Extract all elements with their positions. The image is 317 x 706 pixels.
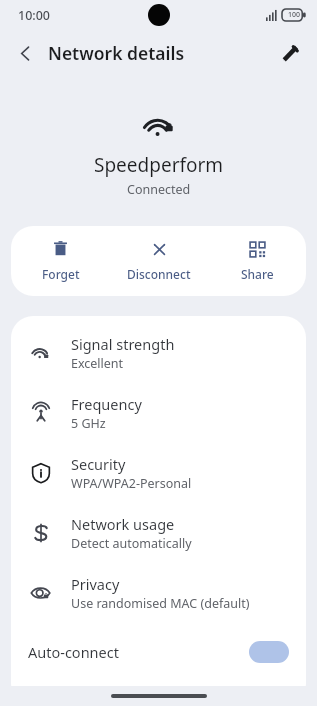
staticText: 10:00 — [18, 7, 51, 24]
button[interactable]: Frequency — [11, 383, 306, 443]
staticText: Speedperform — [94, 152, 224, 178]
staticText: Frequency — [71, 394, 142, 414]
staticText: WPA/WPA2-Personal — [71, 475, 192, 492]
staticText: Excellent — [71, 355, 124, 372]
button[interactable]: Disconnect — [110, 226, 208, 296]
staticText: Signal strength — [71, 334, 175, 354]
staticText: Disconnect — [127, 266, 191, 282]
staticText: Share — [241, 266, 274, 282]
button[interactable]: Forget — [11, 226, 110, 296]
button[interactable]: Network usage — [11, 503, 306, 563]
staticText: Privacy — [71, 574, 120, 594]
button[interactable]: Share — [208, 226, 306, 296]
button[interactable]: Edit — [271, 34, 309, 72]
staticText: Connected — [127, 181, 191, 198]
staticText: Auto-connect — [28, 642, 249, 662]
staticText: 100 — [288, 10, 301, 20]
staticText: Forget — [42, 266, 80, 282]
button[interactable]: Signal strength — [11, 323, 306, 383]
staticText: Network details — [48, 41, 185, 65]
staticText: 5 GHz — [71, 415, 106, 432]
button[interactable]: Security — [11, 443, 306, 503]
staticText: Network usage — [71, 514, 175, 534]
staticText: Use randomised MAC (default) — [71, 595, 250, 612]
button[interactable]: Privacy — [11, 563, 306, 623]
button[interactable]: Back — [6, 34, 44, 72]
button[interactable]: Auto-connect — [11, 631, 306, 673]
staticText: Security — [71, 454, 126, 474]
staticText: Detect automatically — [71, 535, 192, 552]
